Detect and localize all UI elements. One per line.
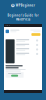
button[interactable]: Article (16, 39, 38, 42)
staticText: Beginner's Guide for (7, 14, 38, 17)
button[interactable]: Article (16, 48, 38, 51)
staticText: WordPress (16, 18, 30, 21)
button[interactable]: Article (16, 44, 38, 46)
staticText: WPBeginner (16, 4, 35, 7)
button[interactable]: Article (16, 53, 38, 55)
button[interactable]: Get started (31, 33, 40, 36)
button[interactable]: W (0, 0, 46, 11)
staticText: W (11, 4, 14, 7)
